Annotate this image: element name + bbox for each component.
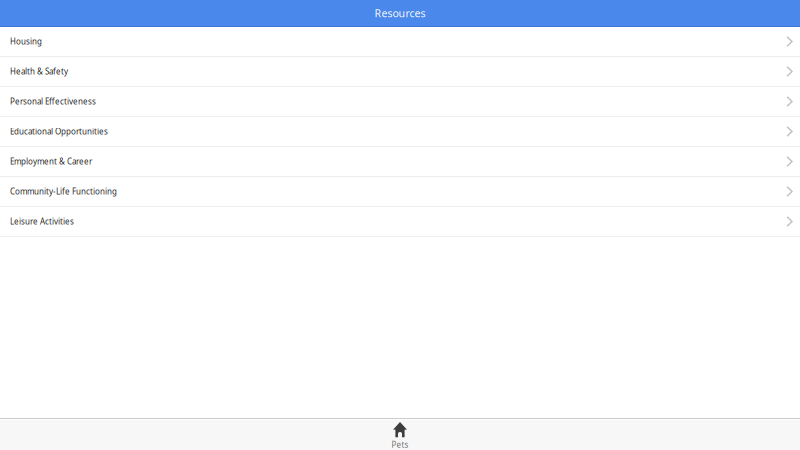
button[interactable]: Health & Safety <box>0 57 800 87</box>
button[interactable]: Community-Life Functioning <box>0 177 800 207</box>
button[interactable]: Educational Opportunities <box>0 117 800 147</box>
button[interactable]: Pets <box>0 419 800 450</box>
button[interactable]: Personal Effectiveness <box>0 87 800 117</box>
staticText: Employment & Career <box>10 156 92 167</box>
button[interactable]: Leisure Activities <box>0 207 800 237</box>
staticText: Leisure Activities <box>10 216 74 227</box>
staticText: Resources <box>374 6 425 20</box>
staticText: Pets <box>391 439 408 450</box>
staticText: Educational Opportunities <box>10 126 108 137</box>
button[interactable]: Housing <box>0 27 800 57</box>
staticText: Personal Effectiveness <box>10 96 96 107</box>
button[interactable]: Employment & Career <box>0 147 800 177</box>
staticText: Housing <box>10 36 42 47</box>
staticText: Health & Safety <box>10 66 68 77</box>
staticText: Community-Life Functioning <box>10 186 117 197</box>
